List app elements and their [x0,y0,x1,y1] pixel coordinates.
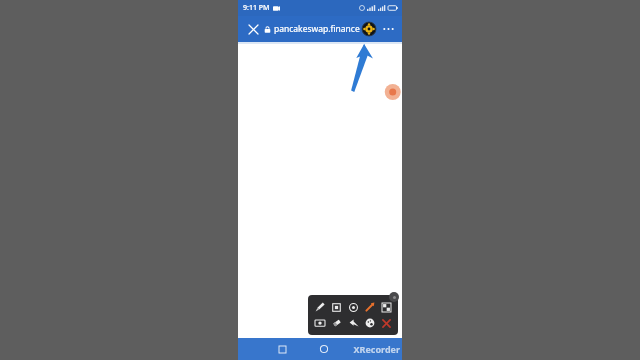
button[interactable]: Eraser [329,315,344,331]
button[interactable]: Ellipse [346,299,361,315]
staticText: XRecorder [353,343,400,355]
button[interactable]: Mosaic [379,299,394,315]
button[interactable]: Color palette [362,315,377,331]
button[interactable]: Recent apps [274,341,290,357]
button[interactable]: Close [244,20,262,38]
button[interactable]: Arrow [362,299,377,315]
staticText: 9:11 PM [243,3,270,13]
button[interactable]: Brush [312,299,327,315]
staticText: pancakeswap.finance [274,23,360,35]
button[interactable]: Site icon [361,21,377,37]
button[interactable]: Screenshot [312,315,327,331]
button[interactable]: Home [316,341,332,357]
button[interactable]: Close toolbar [379,315,394,331]
button[interactable]: More options [380,21,396,37]
button[interactable]: Undo [346,315,361,331]
button[interactable]: Rectangle [329,299,344,315]
button[interactable]: Move toolbar [389,292,399,302]
